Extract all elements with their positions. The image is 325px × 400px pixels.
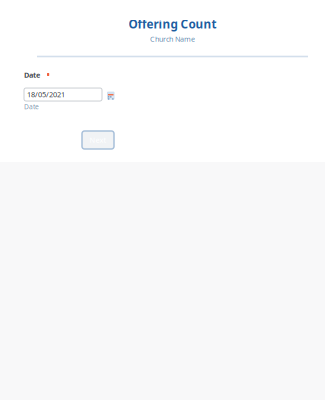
staticText: Next [89,135,106,145]
button[interactable]: Choose date [107,89,114,100]
staticText: Date [24,102,39,111]
staticText: 18/05/2021 [27,89,65,99]
button[interactable]: Next [82,131,114,149]
staticText: Date [24,70,40,80]
staticText: Offering Count [128,16,216,32]
staticText: Church Name [150,34,195,44]
